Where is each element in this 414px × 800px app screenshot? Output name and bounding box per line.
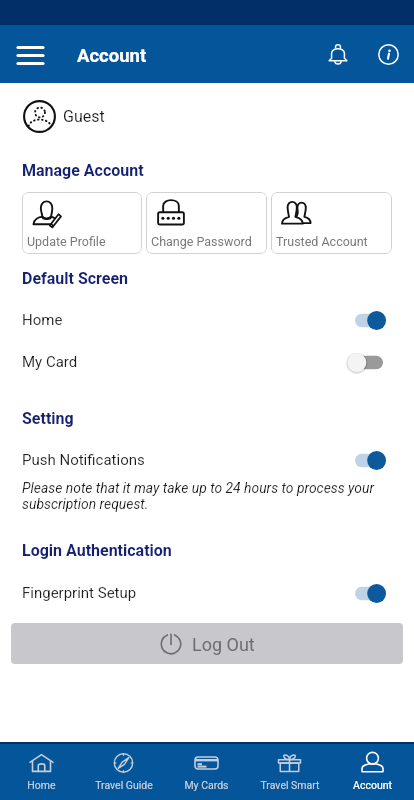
staticText: Please note that it may take up to 24 ho… — [22, 480, 394, 513]
button[interactable]: Notifications — [316, 32, 360, 76]
button[interactable]: My Card — [0, 349, 414, 375]
button[interactable]: Home — [0, 307, 414, 333]
button[interactable]: Fingerprint Setup — [0, 580, 414, 606]
button[interactable]: Guest — [0, 96, 414, 136]
button[interactable]: Log Out — [11, 623, 403, 664]
staticText: My Card — [22, 353, 78, 371]
staticText: Travel Guide — [95, 779, 153, 791]
button[interactable]: Home — [0, 744, 82, 800]
button[interactable]: Info — [366, 32, 410, 76]
button[interactable]: Change Password — [146, 192, 267, 254]
staticText: Home — [27, 779, 56, 791]
button[interactable]: Account — [331, 744, 414, 800]
button[interactable]: Push Notifications — [0, 447, 414, 473]
staticText: My Cards — [184, 779, 229, 791]
staticText: Trusted Account — [276, 234, 368, 249]
button[interactable]: Travel Smart — [248, 744, 331, 800]
staticText: Change Password — [151, 234, 252, 249]
staticText: Guest — [63, 107, 105, 126]
staticText: Account — [77, 45, 147, 67]
button[interactable]: My Cards — [165, 744, 248, 800]
staticText: Fingerprint Setup — [22, 584, 137, 602]
staticText: Setting — [22, 409, 74, 428]
staticText: Push Notifications — [22, 451, 145, 469]
staticText: Manage Account — [22, 161, 144, 180]
staticText: Default Screen — [22, 269, 129, 288]
staticText: Update Profile — [27, 234, 106, 249]
staticText: Log Out — [192, 634, 255, 655]
button[interactable]: Travel Guide — [82, 744, 165, 800]
button[interactable]: Menu — [8, 33, 52, 77]
staticText: Home — [22, 311, 63, 329]
button[interactable]: Trusted Account — [271, 192, 392, 254]
button[interactable]: Update Profile — [22, 192, 142, 254]
staticText: Account — [353, 779, 392, 791]
staticText: Travel Smart — [260, 779, 320, 791]
staticText: Login Authentication — [22, 541, 172, 560]
